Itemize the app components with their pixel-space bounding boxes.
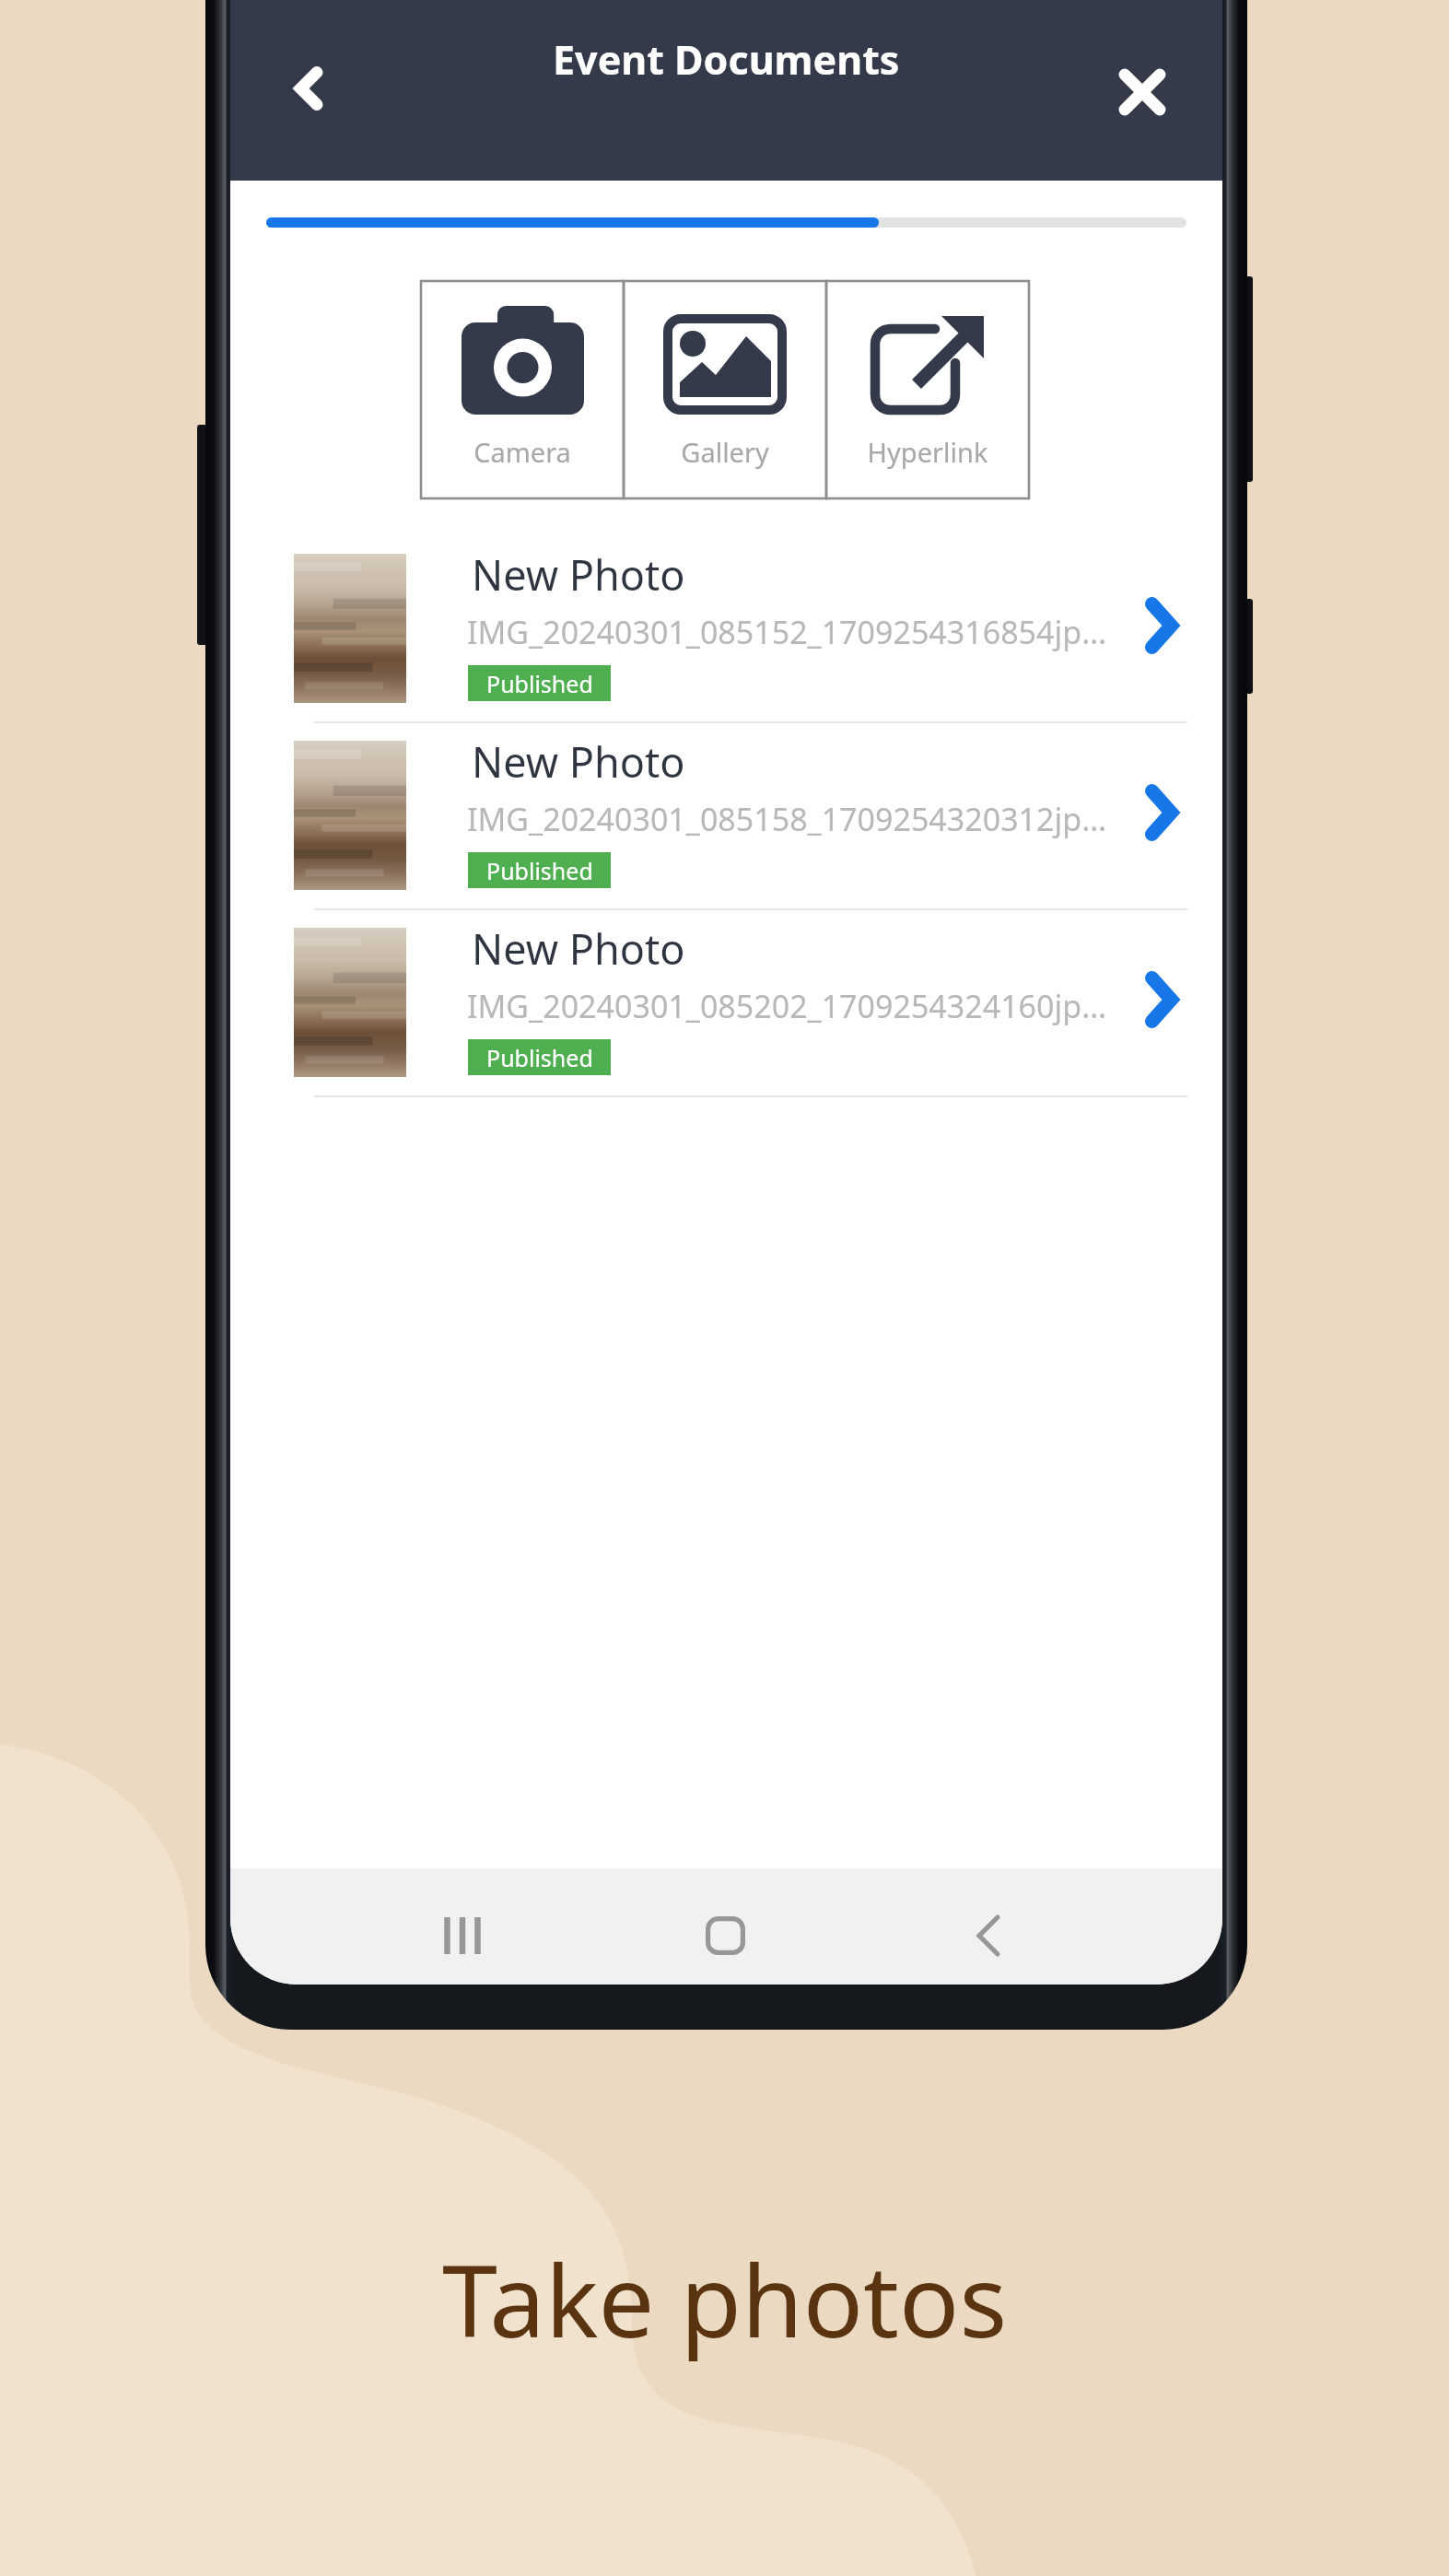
- button[interactable]: New Photo: [230, 738, 1222, 925]
- button[interactable]: New Photo: [230, 925, 1222, 1112]
- button[interactable]: Camera: [421, 281, 624, 498]
- staticText: IMG_20240301_085152_1709254316854jpg...: [467, 611, 1107, 653]
- staticText: IMG_20240301_085158_1709254320312jpg....: [467, 798, 1107, 840]
- staticText: Gallery: [624, 434, 826, 470]
- staticText: New Photo: [472, 920, 685, 977]
- staticText: Hyperlink: [826, 434, 1029, 470]
- button[interactable]: Home: [679, 1890, 771, 1982]
- staticText: Event Documents: [553, 32, 900, 87]
- button[interactable]: Recent apps: [416, 1890, 508, 1982]
- button[interactable]: Close: [1090, 40, 1195, 145]
- button[interactable]: Gallery: [624, 281, 826, 498]
- staticText: New Photo: [472, 546, 685, 603]
- button[interactable]: Back: [256, 36, 361, 141]
- staticText: Published: [486, 855, 593, 886]
- button[interactable]: New Photo: [230, 551, 1222, 738]
- staticText: IMG_20240301_085202_1709254324160jpg...: [467, 985, 1107, 1027]
- staticText: Published: [486, 668, 593, 699]
- button[interactable]: Back: [942, 1890, 1034, 1982]
- staticText: Camera: [421, 434, 624, 470]
- staticText: New Photo: [472, 733, 685, 790]
- button[interactable]: Hyperlink: [826, 281, 1029, 498]
- staticText: Published: [486, 1042, 593, 1073]
- staticText: Take photos: [0, 2231, 1449, 2367]
